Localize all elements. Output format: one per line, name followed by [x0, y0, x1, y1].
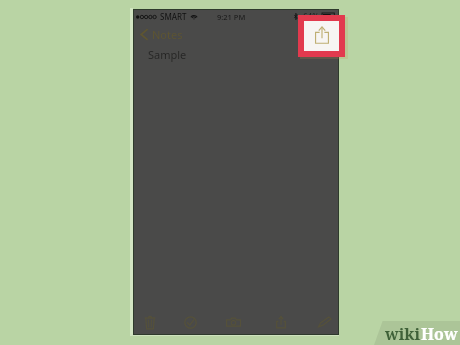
staticText: Sample — [148, 47, 187, 62]
button[interactable]: Camera — [217, 304, 249, 334]
staticText: SMART — [160, 11, 187, 22]
staticText: 9:21 PM — [217, 12, 246, 22]
staticText: Notes — [152, 27, 183, 42]
staticText: How — [421, 323, 458, 345]
button[interactable]: Compose — [308, 304, 340, 334]
staticText: wiki — [385, 323, 421, 345]
staticText: 64% — [303, 11, 319, 22]
button[interactable]: Share — [304, 21, 339, 51]
button[interactable]: Notes — [134, 24, 189, 45]
button[interactable]: Checklist — [174, 304, 206, 334]
button[interactable]: Delete — [134, 304, 166, 334]
